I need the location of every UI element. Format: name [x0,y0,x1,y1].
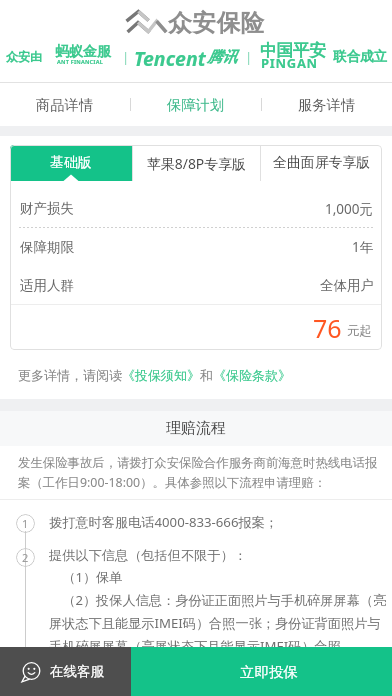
staticText: 众安保险 [168,8,265,38]
button[interactable]: 立即投保 [131,647,392,696]
button[interactable]: 商品详情 [0,83,130,126]
staticText: 全体用户 [320,277,374,294]
staticText: 众安由 [6,49,42,64]
staticText: 拨打意时客服电话4000-833-666报案； [49,513,278,531]
staticText: 立即投保 [240,663,298,681]
button[interactable]: 基础版 [10,145,132,181]
staticText: 蚂蚁金服 [55,43,111,61]
staticText: 2 [22,550,29,565]
staticText: 元起 [347,323,372,339]
staticText: 1 [22,516,29,531]
staticText: 中国平安 [260,40,326,61]
staticText: 更多详情，请阅读 [18,367,122,383]
staticText: 在线客服 [50,663,104,680]
button[interactable]: 全曲面屏专享版 [261,145,382,181]
staticText: 适用人群 [20,277,74,294]
staticText: 苹果8/8P专享版 [147,154,246,173]
button[interactable]: 在线客服 [0,647,131,696]
staticText: ANT FINANCIAL [57,58,103,65]
staticText: 和 [200,367,213,383]
staticText: 腾讯 [207,48,237,67]
staticText: 全曲面屏专享版 [273,154,371,172]
staticText: 理赔流程 [166,419,226,438]
staticText: 商品详情 [36,96,94,114]
button[interactable]: 《保险条款》 [213,367,291,383]
staticText: 提供以下信息（包括但不限于）： （1）保单 （2）投保人信息：身份证正面照片与手… [49,547,390,655]
staticText: 联合成立 [333,48,387,65]
staticText: 1,000元 [325,200,374,218]
staticText: 保障计划 [167,96,225,114]
button[interactable]: 服务详情 [262,83,392,126]
button[interactable]: 《投保须知》 [122,367,200,383]
staticText: 1年 [352,238,374,256]
button[interactable]: 苹果8/8P专享版 [133,145,260,181]
staticText: 基础版 [50,154,92,172]
staticText: 76 [313,311,342,345]
staticText: 财产损失 [20,200,74,217]
staticText: PINGAN [261,54,318,72]
button[interactable]: 保障计划 [131,83,261,126]
staticText: 发生保险事故后，请拨打众安保险合作服务商前海意时热线电话报案（工作日9:00-1… [18,455,378,490]
staticText: Tencent [134,45,206,72]
staticText: 服务详情 [298,96,356,114]
staticText: | [245,48,253,66]
staticText: 保障期限 [20,239,74,256]
staticText: | [122,48,130,66]
